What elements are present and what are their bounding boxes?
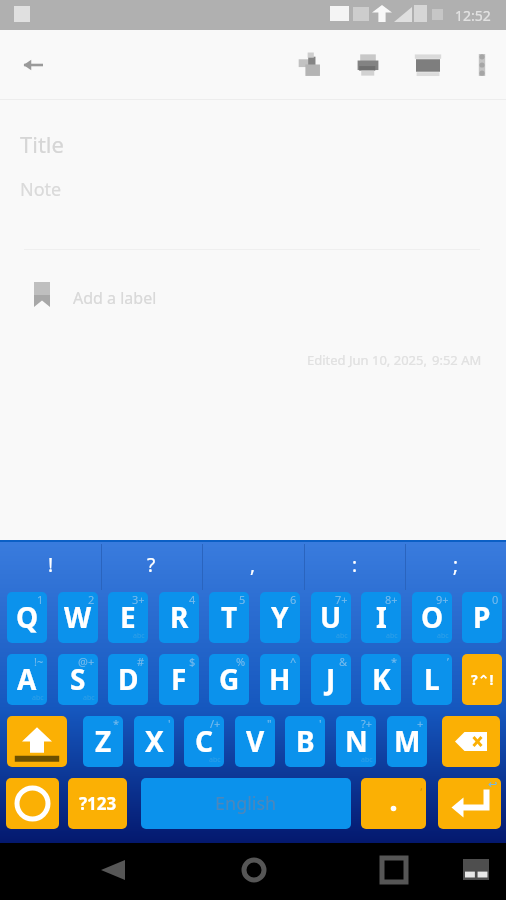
button[interactable]: V (235, 716, 275, 767)
button[interactable]: U (311, 592, 351, 643)
staticText: /+ (210, 716, 221, 731)
staticText: T (221, 598, 238, 636)
button[interactable]: A (7, 654, 47, 705)
button[interactable]: Q (7, 592, 47, 643)
staticText: ?123 (79, 792, 117, 815)
staticText: 3+ (132, 592, 145, 607)
staticText: V (246, 722, 265, 760)
staticText: S (70, 660, 86, 698)
button[interactable]: English (141, 778, 351, 829)
button[interactable]: Enter (438, 778, 501, 829)
button[interactable]: Shift (7, 716, 67, 767)
staticText: 8+ (385, 592, 398, 607)
staticText: @+ (78, 654, 95, 669)
staticText: 2 (88, 592, 95, 607)
staticText: I (376, 598, 387, 636)
button[interactable]: W (58, 592, 98, 643)
staticText: K (372, 660, 391, 698)
button[interactable]: D (108, 654, 148, 705)
staticText: N (345, 722, 368, 760)
staticText: Add a label (73, 287, 157, 309)
staticText: 0 (492, 592, 499, 607)
staticText: abc (83, 693, 95, 703)
staticText: R (170, 598, 189, 636)
staticText: ' (319, 716, 322, 731)
staticText: : (352, 552, 358, 578)
button[interactable]: Pin note (288, 42, 334, 88)
staticText: & (339, 654, 348, 669)
button[interactable]: Home (226, 843, 281, 900)
staticText: ’ (447, 654, 449, 669)
button[interactable]: ! (0, 540, 101, 592)
button[interactable]: G (209, 654, 249, 705)
button[interactable]: More options (459, 42, 505, 88)
button[interactable]: L (412, 654, 452, 705)
button[interactable]: B (285, 716, 325, 767)
staticText: 9+ (436, 592, 449, 607)
button[interactable]: O (412, 592, 452, 643)
button[interactable]: J (311, 654, 351, 705)
button[interactable]: Z (83, 716, 123, 767)
button[interactable]: T (209, 592, 249, 643)
staticText: C (195, 722, 213, 760)
staticText: Edited Jun 10, 2025, (307, 351, 427, 369)
staticText: % (236, 654, 246, 669)
button[interactable]: X (134, 716, 174, 767)
button[interactable]: K (361, 654, 401, 705)
button[interactable]: H (260, 654, 300, 705)
button[interactable]: ; (405, 540, 506, 592)
staticText: $ (189, 654, 196, 669)
staticText: O (421, 598, 444, 636)
button[interactable]: Period (361, 778, 426, 829)
staticText: Y (271, 598, 289, 636)
button[interactable]: I (361, 592, 401, 643)
staticText: J (326, 660, 336, 698)
staticText: ' (168, 716, 171, 731)
button[interactable]: R (159, 592, 199, 643)
staticText: abc (437, 631, 449, 641)
staticText: abc (386, 631, 398, 641)
staticText: abc (133, 631, 145, 641)
button[interactable]: Back (85, 843, 140, 900)
button[interactable]: ?123 (68, 778, 127, 829)
button[interactable]: P (462, 592, 502, 643)
staticText: M (394, 722, 421, 760)
button[interactable]: Archive (405, 42, 451, 88)
staticText: 4 (189, 592, 196, 607)
staticText: ! (48, 552, 54, 578)
staticText: 12:52 (455, 6, 491, 25)
button[interactable]: ?⌃! (462, 654, 502, 705)
button[interactable]: Navigate back (10, 42, 56, 88)
button[interactable]: M (387, 716, 427, 767)
staticText: P (473, 598, 491, 636)
staticText: abc (32, 693, 44, 703)
button[interactable]: , (202, 540, 303, 592)
staticText: 7+ (335, 592, 348, 607)
staticText: Z (95, 722, 112, 760)
staticText: " (267, 716, 272, 731)
staticText: ?⌃! (471, 670, 494, 689)
staticText: ?+ (361, 716, 373, 731)
button[interactable]: S (58, 654, 98, 705)
button[interactable]: C (184, 716, 224, 767)
staticText: W (64, 598, 92, 636)
button[interactable]: Emoji (6, 778, 59, 829)
staticText: F (171, 660, 187, 698)
staticText: abc (209, 755, 221, 765)
staticText: !~ (34, 654, 44, 669)
button[interactable]: Recent apps (366, 843, 421, 900)
button[interactable]: : (304, 540, 405, 592)
button[interactable]: Add a label (18, 278, 198, 312)
staticText: * (113, 716, 120, 731)
staticText: L (424, 660, 440, 698)
button[interactable]: Add reminder (345, 42, 391, 88)
staticText: 5 (239, 592, 246, 607)
button[interactable]: Backspace (442, 716, 500, 767)
staticText: A (17, 660, 37, 698)
button[interactable]: Switch keyboard (450, 843, 502, 900)
button[interactable]: E (108, 592, 148, 643)
button[interactable]: ? (101, 540, 202, 592)
button[interactable]: F (159, 654, 199, 705)
button[interactable]: Y (260, 592, 300, 643)
button[interactable]: N (336, 716, 376, 767)
